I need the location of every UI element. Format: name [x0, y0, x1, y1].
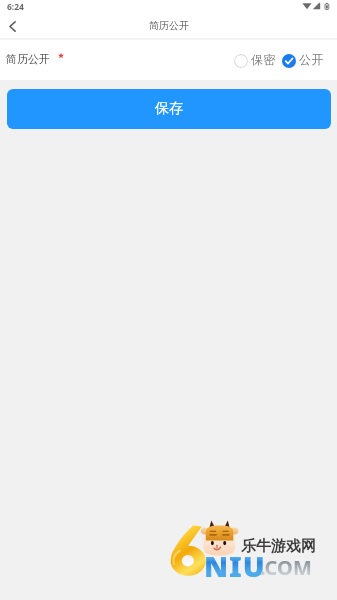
- staticText: 乐牛游戏网: [241, 537, 316, 556]
- button[interactable]: 公开: [282, 49, 324, 72]
- staticText: 保存: [155, 100, 183, 118]
- button[interactable]: Back: [3, 16, 21, 38]
- staticText: 保密: [251, 52, 276, 67]
- staticText: 简历公开: [149, 19, 189, 32]
- button[interactable]: 保密: [234, 49, 276, 72]
- staticText: 6:24: [7, 1, 24, 13]
- staticText: 简历公开: [6, 52, 50, 66]
- staticText: .COM: [260, 554, 312, 581]
- staticText: NIU: [204, 546, 266, 585]
- button[interactable]: 保存: [7, 89, 331, 129]
- staticText: 公开: [299, 52, 324, 67]
